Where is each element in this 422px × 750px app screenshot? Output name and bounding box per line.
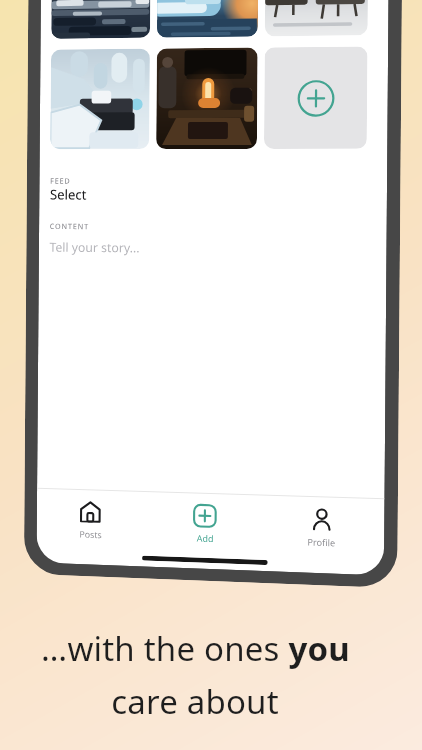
staticText: Select [50,186,87,203]
button[interactable]: Select [50,186,376,205]
staticText: Add [197,532,214,544]
button[interactable]: Tell your story... [49,239,375,258]
staticText: Profile [307,535,336,548]
button[interactable]: Add [147,502,263,546]
staticText: care about [111,679,279,724]
staticText: Posts [79,528,102,540]
staticText: …with the ones you [41,626,350,671]
staticText: Tell your story... [49,239,141,256]
button[interactable]: Posts [37,499,147,542]
staticText: CONTENT [50,221,90,231]
staticText: FEED [50,176,71,186]
button[interactable]: Profile [263,506,381,550]
button[interactable] [264,46,367,149]
